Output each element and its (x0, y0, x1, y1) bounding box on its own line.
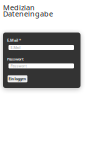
button[interactable]: Einloggen (8, 75, 27, 82)
staticText: E-Mail * (7, 38, 21, 43)
staticText: E-Mail (10, 45, 20, 50)
staticText: Passwort (10, 63, 26, 68)
staticText: Passwort (7, 56, 24, 62)
staticText: Einloggen (8, 76, 26, 81)
staticText: Dateneingabe (3, 9, 53, 19)
staticText: Medizian (3, 2, 35, 12)
